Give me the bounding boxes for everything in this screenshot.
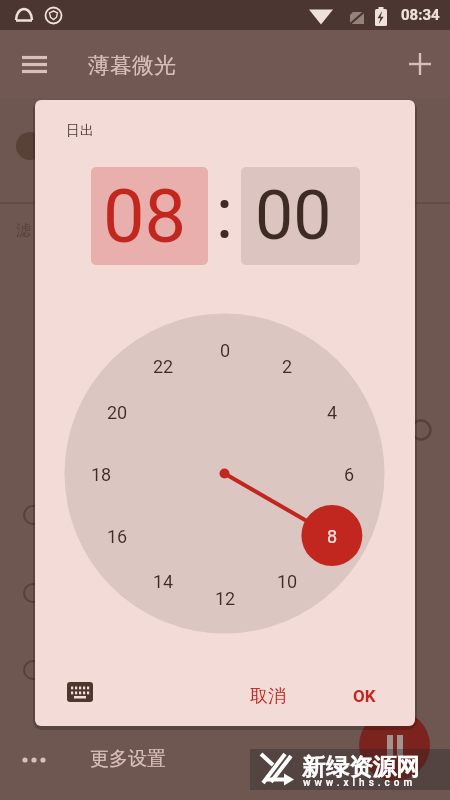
button[interactable]: 2	[267, 353, 307, 379]
button[interactable]: 8	[312, 523, 352, 549]
staticText: 08	[103, 173, 187, 260]
button[interactable]: 14	[143, 568, 183, 594]
button[interactable]: 薄暮微光	[88, 52, 268, 80]
staticText: 10	[277, 571, 298, 592]
button[interactable]: 00	[241, 167, 360, 265]
button[interactable]: 08	[91, 167, 208, 265]
staticText: 薄暮微光	[88, 52, 176, 80]
staticText: 6	[344, 464, 355, 485]
button[interactable]	[10, 44, 58, 84]
staticText: 18	[91, 464, 112, 485]
button[interactable]: 22	[143, 353, 183, 379]
button[interactable]	[59, 674, 101, 710]
button[interactable]	[359, 710, 430, 781]
button[interactable]: 12	[205, 585, 245, 611]
staticText: 2	[282, 356, 293, 377]
staticText: 20	[107, 402, 128, 423]
staticText: www.xlhs.com	[303, 777, 417, 789]
button[interactable]	[398, 44, 442, 84]
staticText: 14	[153, 571, 174, 592]
staticText: OK	[353, 686, 376, 706]
staticText: 新绿资源网	[302, 752, 420, 782]
button[interactable]: 更多设置	[90, 747, 210, 771]
staticText: 滤镜	[16, 221, 42, 241]
staticText: 00	[255, 176, 332, 256]
staticText: 08:34	[401, 6, 440, 24]
staticText: 8	[327, 526, 338, 547]
staticText: 12	[215, 588, 236, 609]
button[interactable]: 20	[97, 399, 137, 425]
button[interactable]: 10	[267, 568, 307, 594]
button[interactable]: 6	[329, 461, 369, 487]
staticText: 0	[220, 340, 231, 361]
staticText: 4	[327, 402, 338, 423]
staticText: 16	[107, 526, 128, 547]
button[interactable]: OK	[334, 676, 394, 716]
staticText: 日出	[66, 122, 94, 140]
staticText: 更多设置	[90, 747, 166, 771]
button[interactable]: 取消	[224, 676, 312, 716]
button[interactable]: 0	[205, 337, 245, 363]
staticText: 22	[153, 356, 174, 377]
button[interactable]: 16	[97, 523, 137, 549]
staticText: 取消	[250, 685, 286, 708]
button[interactable]: 4	[312, 399, 352, 425]
button[interactable]: 18	[81, 461, 121, 487]
